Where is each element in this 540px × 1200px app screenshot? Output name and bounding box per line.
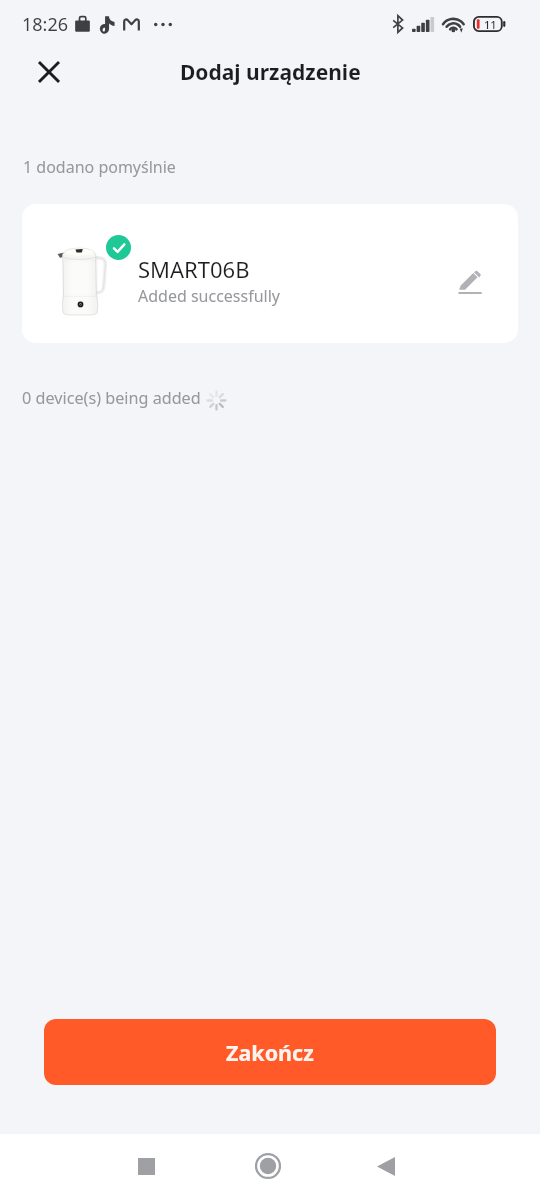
button[interactable]: Edit device name [448,260,492,304]
button[interactable]: Recent apps [120,1140,172,1192]
button[interactable]: Close [27,50,71,94]
button[interactable]: Home [242,1140,294,1192]
staticText: 0 device(s) being added [22,387,201,409]
button[interactable]: SMART06B [22,204,518,343]
staticText: Zakończ [226,1038,314,1067]
button[interactable]: Zakończ [44,1019,496,1085]
staticText: 11 [484,17,497,32]
button[interactable]: Back [360,1140,412,1192]
staticText: 18:26 [22,12,69,37]
staticText: 1 dodano pomyślnie [23,156,176,178]
staticText: Dodaj urządzenie [180,58,361,87]
staticText: SMART06B [138,254,250,284]
staticText: Added successfully [138,285,281,307]
